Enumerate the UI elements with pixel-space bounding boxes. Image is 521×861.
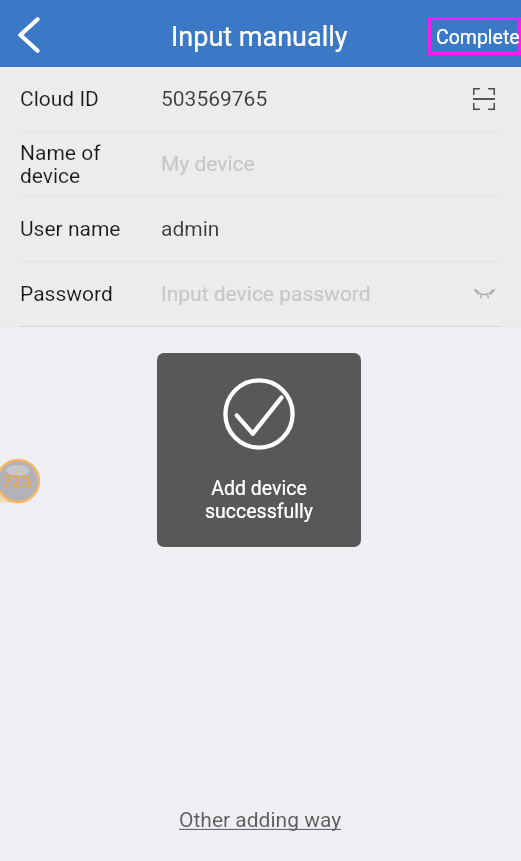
staticText: User name [20,217,161,242]
button[interactable]: Battery 72 percent [0,458,41,504]
staticText: Input device password [161,282,447,307]
staticText: Complete [436,26,520,49]
button[interactable]: Name of device [0,132,521,196]
staticText: Name of device [20,141,161,188]
button[interactable]: Show password [462,272,506,316]
staticText: Other adding way [179,808,342,833]
staticText: Cloud ID [20,87,161,112]
button[interactable]: Back [0,0,58,67]
staticText: 503569765 [161,87,447,112]
button[interactable]: User name [0,197,521,261]
button[interactable]: Cloud ID [0,67,521,131]
button[interactable]: Password [0,262,521,326]
staticText: My device [161,152,447,177]
staticText: Add device successfully [205,477,313,523]
button[interactable]: Other adding way [179,808,342,833]
staticText: Password [20,282,161,307]
button[interactable]: Complete [428,17,521,55]
button[interactable]: Scan QR code [462,77,506,121]
staticText: Input manually [171,21,348,53]
staticText: admin [161,217,447,242]
staticText: 72% [3,472,33,491]
